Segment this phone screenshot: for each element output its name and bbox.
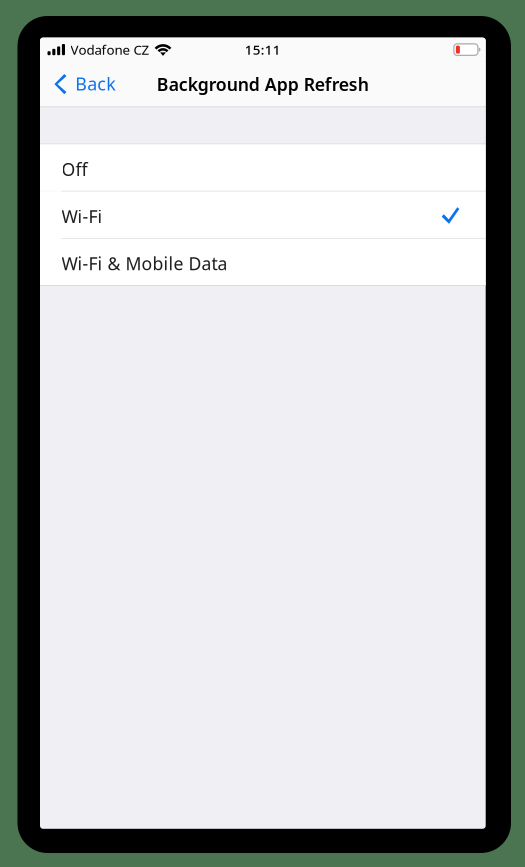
button[interactable]: Wi-Fi — [40, 192, 486, 238]
button[interactable]: Off — [40, 144, 486, 191]
staticText: Off — [61, 157, 87, 181]
staticText: Back — [75, 71, 116, 96]
staticText: Vodafone CZ — [70, 41, 149, 58]
staticText: Wi-Fi — [61, 204, 102, 228]
staticText: 15:11 — [245, 41, 281, 58]
staticText: Background App Refresh — [157, 72, 369, 96]
button[interactable]: Wi-Fi & Mobile Data — [40, 239, 486, 285]
button[interactable]: Back — [40, 62, 126, 107]
staticText: Wi-Fi & Mobile Data — [61, 251, 227, 275]
